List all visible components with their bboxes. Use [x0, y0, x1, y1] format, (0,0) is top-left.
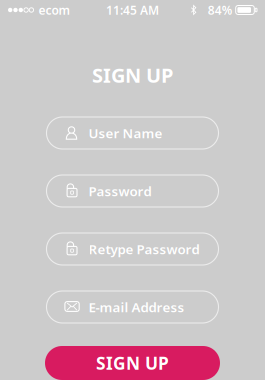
staticText: Retype Password	[88, 240, 199, 258]
staticText: User Name	[88, 124, 162, 142]
staticText: SIGN UP	[96, 351, 169, 374]
staticText: 84%	[208, 2, 233, 18]
staticText: 11:45 AM	[106, 2, 159, 18]
button[interactable]: E-mail Address	[46, 291, 218, 323]
staticText: ecom	[39, 2, 71, 18]
button[interactable]: Retype Password	[46, 233, 218, 265]
button[interactable]: User Name	[46, 117, 218, 149]
staticText: E-mail Address	[88, 298, 184, 316]
button[interactable]: Password	[46, 175, 218, 207]
staticText: SIGN UP	[92, 62, 173, 88]
button[interactable]: SIGN UP	[45, 346, 220, 380]
staticText: Password	[88, 182, 151, 200]
